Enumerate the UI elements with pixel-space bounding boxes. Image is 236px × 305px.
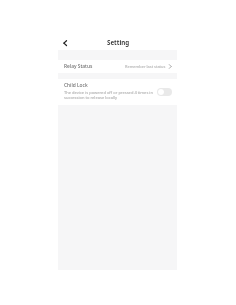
staticText: Remember last status — [125, 64, 166, 69]
staticText: Relay Status — [64, 63, 93, 70]
button[interactable]: Back — [58, 34, 72, 48]
staticText: Child Lock — [64, 82, 88, 89]
staticText: Setting — [107, 38, 130, 46]
button[interactable]: Child Lock toggle — [157, 88, 172, 96]
staticText: The device is powered off or pressed 4 t… — [64, 90, 154, 100]
button[interactable]: Relay Status — [58, 60, 177, 73]
